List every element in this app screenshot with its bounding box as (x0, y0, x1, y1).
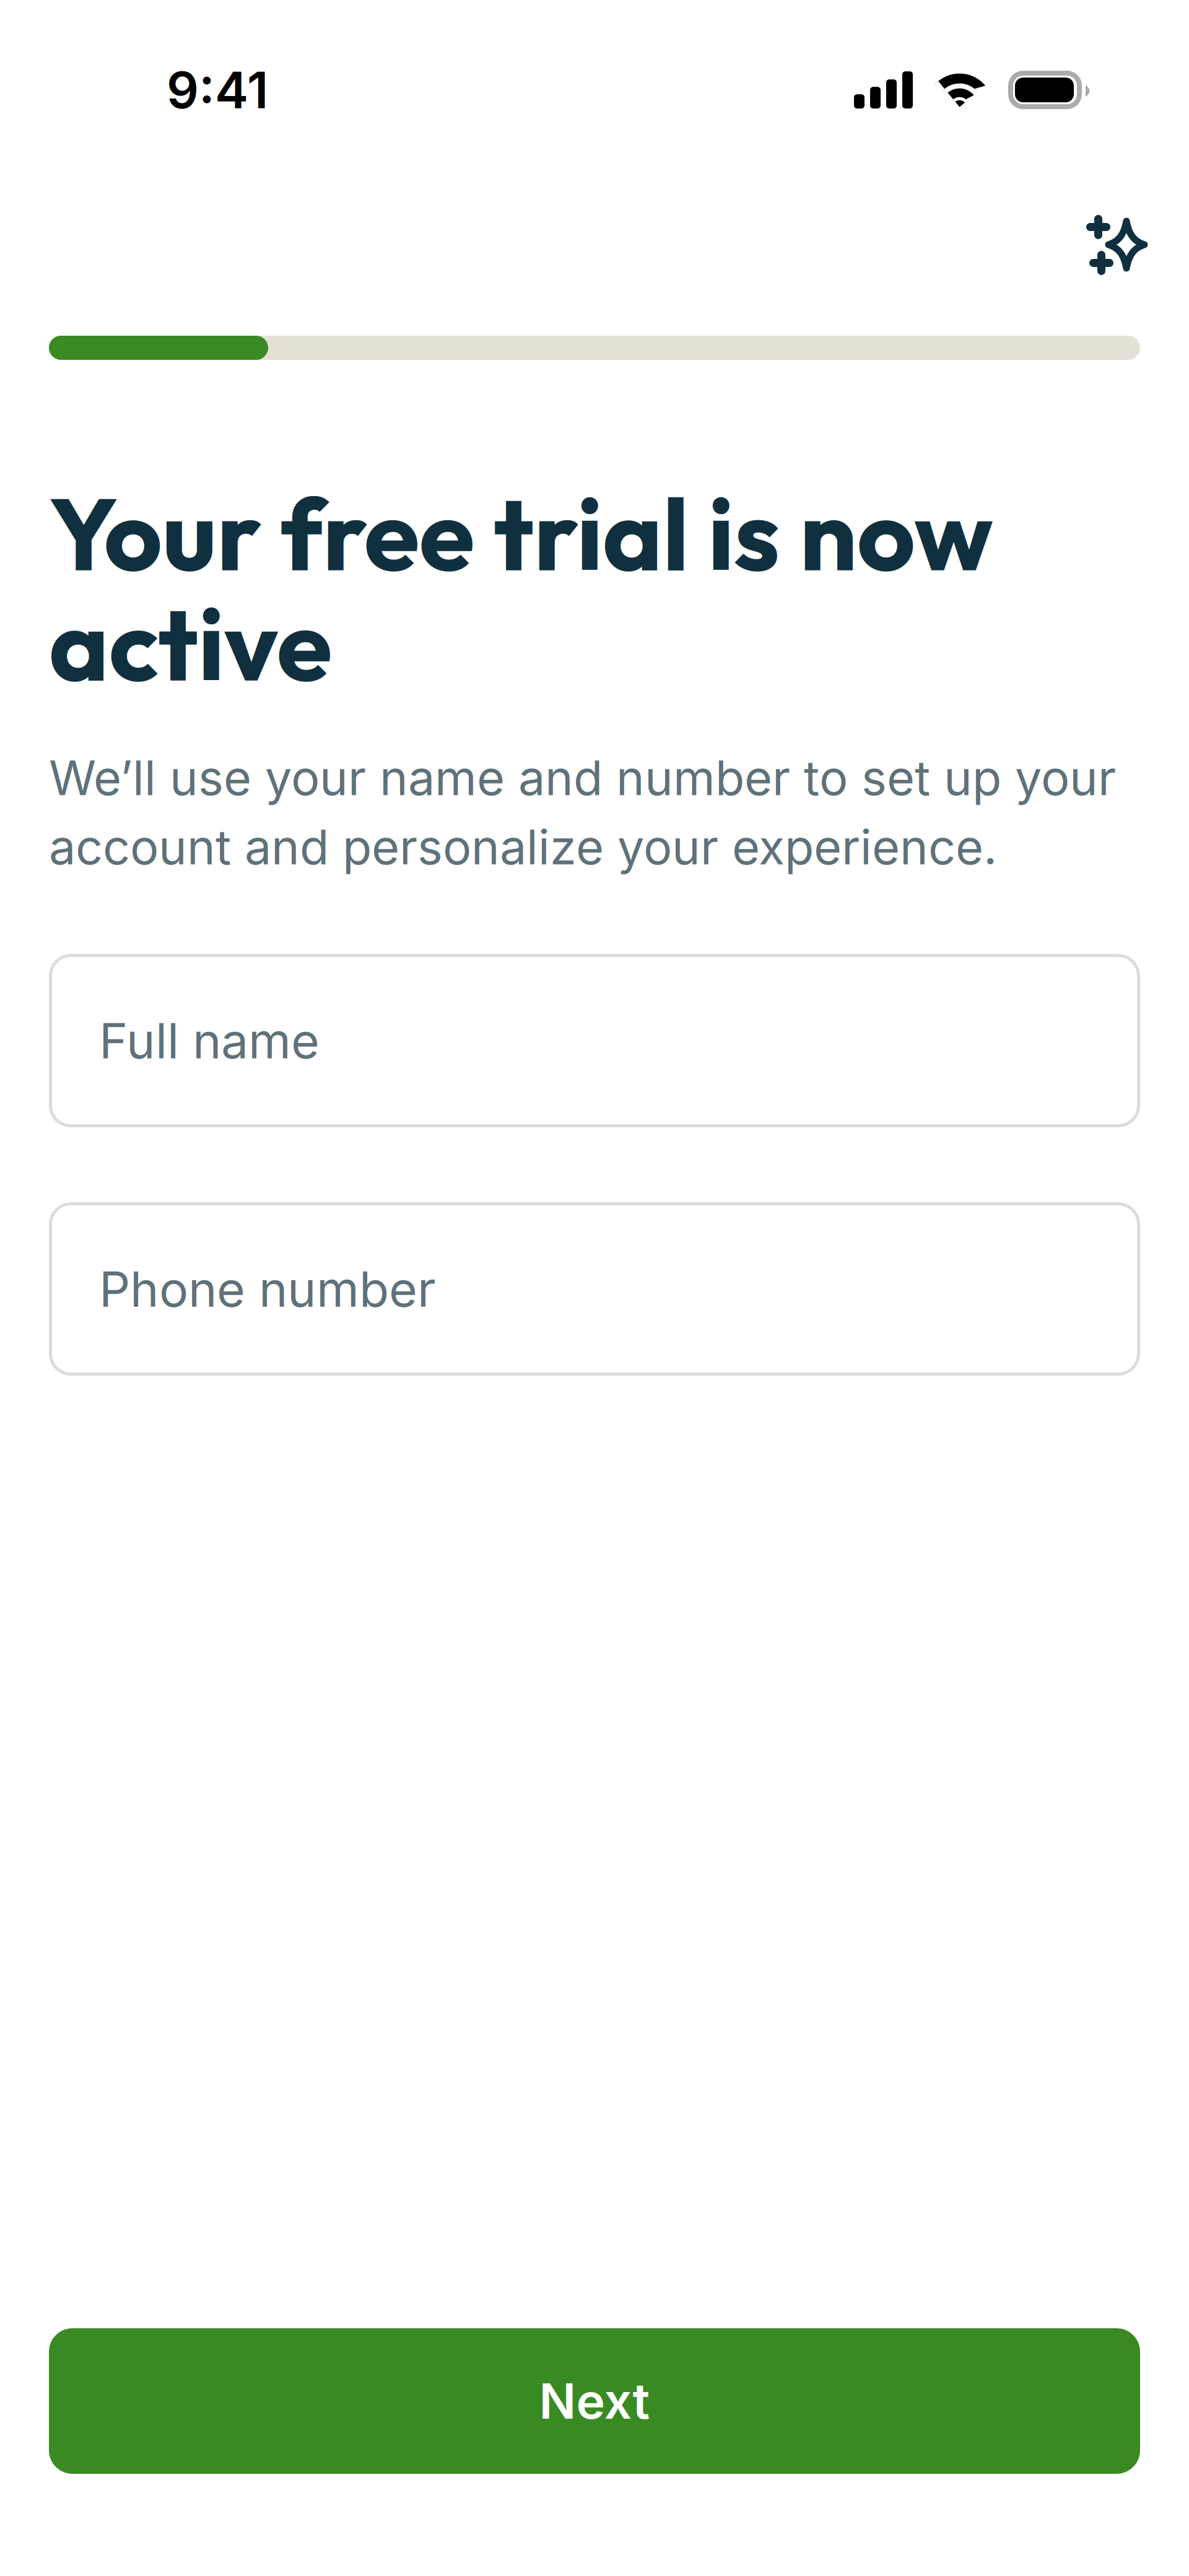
button[interactable]: Next (49, 2328, 1140, 2474)
staticText: Next (539, 2372, 650, 2431)
button[interactable]: Full name (49, 954, 1140, 1127)
staticText: 9:41 (167, 59, 268, 120)
staticText: Your free trial is now active (49, 469, 993, 707)
button[interactable]: AI assistant (1061, 144, 1165, 336)
staticText: Full name (99, 1011, 320, 1070)
staticText: We’ll use your name and number to set up… (49, 749, 1116, 876)
button[interactable]: Phone number (49, 1202, 1140, 1376)
staticText: Phone number (99, 1260, 436, 1318)
